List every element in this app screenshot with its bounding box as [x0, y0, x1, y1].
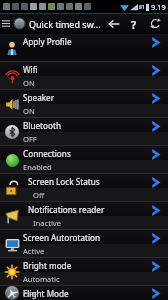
- button[interactable]: Refresh: [144, 13, 166, 34]
- staticText: Wifi: [23, 64, 38, 75]
- staticText: Speaker: [23, 92, 55, 103]
- staticText: Bluetooth: [23, 120, 61, 131]
- staticText: Apply Profile: [23, 36, 72, 47]
- button[interactable]: Flight Mode: [0, 286, 168, 300]
- staticText: ON: [23, 78, 35, 88]
- staticText: OFF: [23, 134, 37, 144]
- button[interactable]: Screen Autorotation: [0, 230, 168, 258]
- button[interactable]: Notifications reader: [0, 202, 168, 230]
- button[interactable]: Screen Lock Status: [0, 174, 168, 202]
- button[interactable]: Speaker: [0, 90, 168, 118]
- staticText: Active: [23, 246, 45, 256]
- staticText: Enabled: [23, 162, 52, 172]
- staticText: Screen Autorotation: [23, 232, 101, 243]
- button[interactable]: Help: [124, 14, 144, 34]
- staticText: ?: [131, 17, 137, 32]
- button[interactable]: Apply Profile: [0, 34, 168, 62]
- staticText: Inactive: [33, 218, 62, 228]
- button[interactable]: Open navigation drawer: [0, 13, 12, 34]
- staticText: OFF: [23, 289, 37, 299]
- button[interactable]: Bluetooth: [0, 118, 168, 146]
- staticText: Quick timed sw...: [29, 18, 101, 30]
- staticText: Notifications reader: [28, 204, 105, 215]
- button[interactable]: Bright mode: [0, 258, 168, 286]
- staticText: Bright mode: [23, 260, 72, 271]
- staticText: Connections: [23, 148, 71, 159]
- staticText: 9.19: [151, 2, 166, 12]
- staticText: ON: [23, 106, 35, 116]
- button[interactable]: Connections: [0, 146, 168, 174]
- staticText: 81: [139, 4, 145, 11]
- staticText: Screen Lock Status: [28, 176, 100, 187]
- button[interactable]: Back: [103, 13, 124, 34]
- staticText: Off: [33, 190, 45, 200]
- staticText: Flight Mode: [23, 288, 69, 299]
- staticText: Automatic: [23, 274, 60, 284]
- button[interactable]: Wifi: [0, 62, 168, 90]
